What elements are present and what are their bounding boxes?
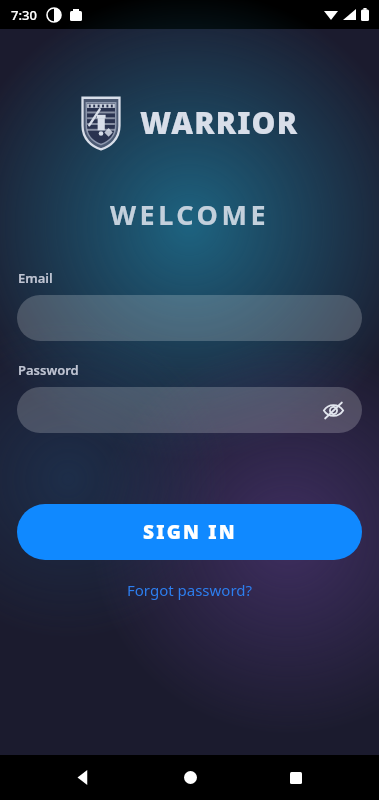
staticText: WELCOME (0, 196, 379, 233)
button[interactable]: Back (59, 755, 107, 800)
button[interactable]: Home (166, 755, 214, 800)
staticText: SIGN IN (143, 519, 237, 545)
button[interactable]: Show password (17, 387, 362, 433)
staticText: Forgot password? (127, 580, 253, 600)
staticText: 7:30 (11, 6, 37, 24)
button[interactable]: Recent apps (272, 755, 320, 800)
button[interactable]: Forgot password? (119, 576, 261, 604)
staticText: Password (18, 361, 79, 379)
button[interactable]: Show password (318, 395, 348, 425)
staticText: WARRIOR (140, 102, 299, 143)
button[interactable] (17, 295, 362, 341)
staticText: Email (18, 269, 53, 287)
button[interactable]: SIGN IN (17, 504, 362, 560)
